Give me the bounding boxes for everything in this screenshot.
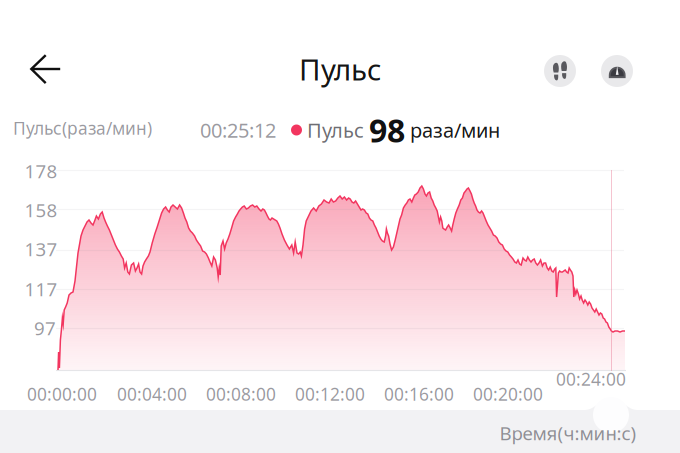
button[interactable]: Pace [601,55,633,87]
staticText: 00:20:00 [473,382,543,405]
staticText: 00:24:00 [556,367,626,390]
staticText: Пульс(раза/мин) [13,116,152,139]
staticText: Время(ч:мин:с) [499,421,636,445]
staticText: Пульс [299,49,381,88]
staticText: 00:25:12 [200,117,276,143]
button[interactable]: Steps [544,55,576,87]
staticText: 00:00:00 [27,382,97,405]
staticText: 98 [369,109,405,151]
staticText: 00:16:00 [384,382,454,405]
staticText: 158 [24,198,57,222]
staticText: 00:12:00 [295,382,365,405]
staticText: 137 [24,237,57,261]
staticText: 117 [24,277,57,301]
staticText: раза/мин [405,117,500,143]
staticText: 00:04:00 [117,382,187,405]
button[interactable]: Back [0,45,76,93]
staticText: Пульс [302,117,369,143]
staticText: 178 [24,159,57,183]
staticText: 00:08:00 [206,382,276,405]
staticText: 97 [34,316,56,340]
